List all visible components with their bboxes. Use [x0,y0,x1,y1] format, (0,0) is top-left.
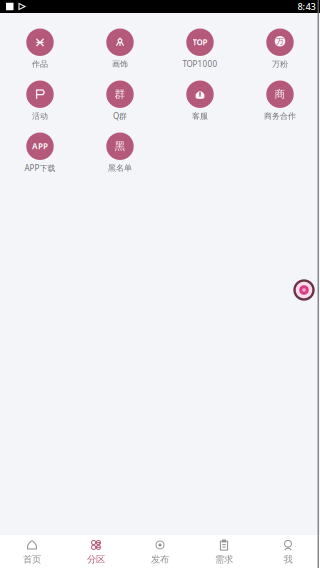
staticText: TOP [192,37,207,47]
button[interactable]: 分区 [64,535,128,568]
button[interactable]: 我 [256,535,320,568]
staticText: Q群 [113,111,127,121]
button[interactable]: 活动 [0,80,80,132]
button[interactable]: 发布 [128,535,192,568]
staticText: 客服 [192,111,208,121]
button[interactable]: 商 [240,80,320,132]
staticText: 万粉 [272,59,288,69]
staticText: 我 [283,554,292,565]
staticText: 活动 [32,111,48,121]
button[interactable]: 群 [80,80,160,132]
staticText: APP下载 [24,163,55,173]
staticText: 画饰 [112,59,128,69]
button[interactable]: 万 [240,28,320,80]
staticText: 商务合作 [264,111,296,121]
button[interactable]: 作品 [0,28,80,80]
staticText: 发布 [151,554,169,565]
staticText: 群 [114,88,125,101]
button[interactable]: 画饰 [80,28,160,80]
staticText: 黑 [114,140,125,153]
staticText: 万 [276,36,284,46]
button[interactable]: TOP [160,28,240,80]
button[interactable]: Quick action [294,280,313,299]
staticText: 黑名单 [108,163,132,173]
button[interactable]: APP [0,132,80,184]
staticText: 分区 [87,554,105,565]
staticText: 首页 [23,554,41,565]
button[interactable]: 黑 [80,132,160,184]
button[interactable]: 客服 [160,80,240,132]
button[interactable]: 需求 [192,535,256,568]
button[interactable]: 首页 [0,535,64,568]
staticText: 商 [274,88,285,101]
staticText: 8:43 [297,0,315,13]
staticText: TOP1000 [182,59,217,69]
staticText: 需求 [215,554,233,565]
staticText: 作品 [32,59,48,69]
staticText: APP [32,141,48,151]
